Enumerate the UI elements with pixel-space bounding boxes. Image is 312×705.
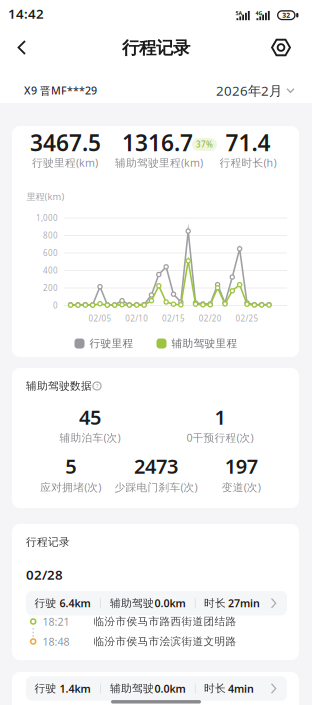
staticText: 辅助驾驶 (110, 597, 154, 610)
staticText: 4min (228, 681, 254, 696)
staticText: 行程记录 (26, 535, 70, 548)
staticText: 1 (214, 404, 225, 430)
staticText: 行驶里程 (89, 337, 133, 350)
staticText: 0 (53, 300, 58, 311)
button[interactable]: Back (2, 30, 42, 65)
staticText: 行程时长(h) (219, 155, 276, 170)
staticText: 14:42 (8, 5, 44, 22)
button[interactable]: 2026年2月 (216, 78, 295, 102)
staticText: 4G (255, 10, 262, 17)
staticText: 02/05 (88, 313, 111, 324)
staticText: 02/20 (199, 313, 222, 324)
staticText: 27min (228, 596, 260, 610)
staticText: 02/15 (162, 313, 185, 324)
staticText: 辅助驾驶里程(km) (115, 155, 203, 170)
staticText: 197 (225, 453, 258, 479)
button[interactable]: 行驶 (26, 676, 287, 701)
staticText: 0.0km (154, 681, 185, 696)
staticText: 临汾市侯马市路西街道团结路 (93, 615, 236, 628)
staticText: 0干预行程(次) (186, 430, 253, 445)
staticText: 6.4km (59, 596, 90, 610)
staticText: 行驶 (34, 682, 56, 695)
staticText: 02/25 (235, 313, 258, 324)
button[interactable]: Settings (261, 30, 301, 65)
staticText: 02/28 (26, 566, 63, 583)
staticText: 5A (235, 10, 242, 17)
staticText: 3467.5 (30, 127, 101, 157)
button[interactable]: Help (90, 379, 104, 393)
staticText: 辅助驾驶数据 (26, 379, 92, 392)
staticText: 0.0km (154, 596, 185, 610)
staticText: 5 (65, 453, 76, 479)
staticText: 行驶里程(km) (32, 155, 98, 170)
staticText: ? (96, 382, 98, 390)
staticText: 800 (43, 230, 58, 241)
staticText: 32 (282, 11, 290, 20)
staticText: 71.4 (225, 127, 270, 157)
staticText: 行程记录 (122, 37, 190, 59)
staticText: 少踩电门刹车(次) (114, 480, 197, 494)
staticText: 时长 (204, 682, 226, 695)
button[interactable]: 行驶 (26, 591, 287, 615)
staticText: 辅助泊车(次) (59, 430, 120, 445)
staticText: 里程(km) (26, 190, 64, 203)
staticText: 37% (196, 139, 213, 150)
staticText: 400 (43, 265, 58, 276)
staticText: 1.4km (59, 681, 90, 696)
staticText: 变道(次) (222, 480, 261, 494)
staticText: 1316.7 (122, 127, 193, 157)
staticText: 应对拥堵(次) (40, 480, 101, 494)
staticText: 时长 (204, 597, 226, 610)
staticText: 辅助驾驶 (110, 682, 154, 695)
staticText: 18:48 (42, 634, 69, 649)
staticText: 1,000 (36, 213, 58, 223)
staticText: 2026年2月 (216, 82, 282, 99)
staticText: 600 (43, 248, 58, 258)
staticText: 45 (79, 404, 101, 430)
staticText: 18:21 (42, 614, 69, 629)
staticText: 200 (43, 283, 58, 293)
staticText: 2473 (134, 453, 178, 479)
staticText: 临汾市侯马市浍滨街道文明路 (93, 635, 236, 648)
staticText: 辅助驾驶里程 (171, 337, 237, 350)
staticText: 行驶 (34, 597, 56, 610)
staticText: 02/10 (125, 313, 148, 324)
staticText: X9 晋MF***29 (24, 83, 97, 98)
